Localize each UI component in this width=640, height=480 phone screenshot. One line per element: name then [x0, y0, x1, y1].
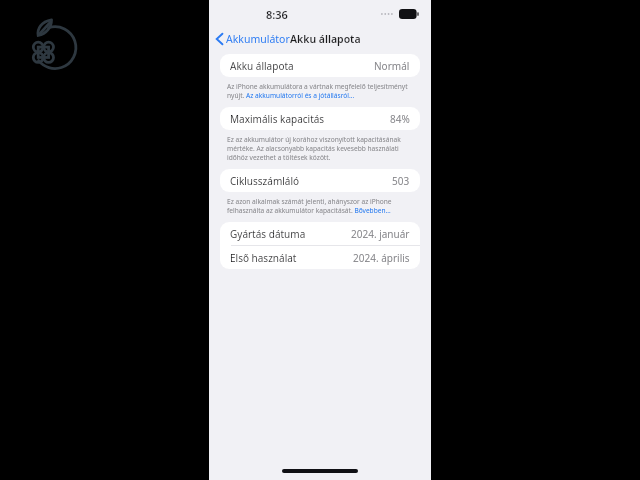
staticText: 2024. április: [353, 251, 410, 265]
button[interactable]: Back: [209, 30, 294, 48]
button[interactable]: Akku állapota: [220, 54, 420, 77]
staticText: 2024. január: [351, 227, 410, 241]
other: Back: [216, 33, 223, 45]
staticText: Ciklusszámláló: [230, 174, 300, 188]
staticText: Akku állapota: [290, 32, 361, 46]
staticText: Ez az akkumulátor új korához viszonyítot…: [227, 135, 415, 162]
staticText: Normál: [374, 59, 410, 73]
staticText: Ez azon alkalmak számát jelenti, ahánysz…: [227, 197, 415, 215]
staticText: Gyártás dátuma: [230, 227, 306, 241]
staticText: 8:36: [266, 7, 288, 22]
button[interactable]: Gyártás dátuma: [220, 222, 420, 245]
button[interactable]: Első használat: [220, 246, 420, 269]
button[interactable]: Maximális kapacitás: [220, 107, 420, 130]
button[interactable]: Ciklusszámláló: [220, 169, 420, 192]
staticText: Maximális kapacitás: [230, 112, 325, 126]
staticText: Első használat: [230, 251, 297, 265]
staticText: Akku állapota: [230, 59, 294, 73]
staticText: Akkumulátor: [226, 32, 290, 46]
staticText: 84%: [390, 112, 410, 126]
staticText: 503: [392, 174, 410, 188]
staticText: Az iPhone akkumulátora a vártnak megfele…: [227, 82, 415, 100]
